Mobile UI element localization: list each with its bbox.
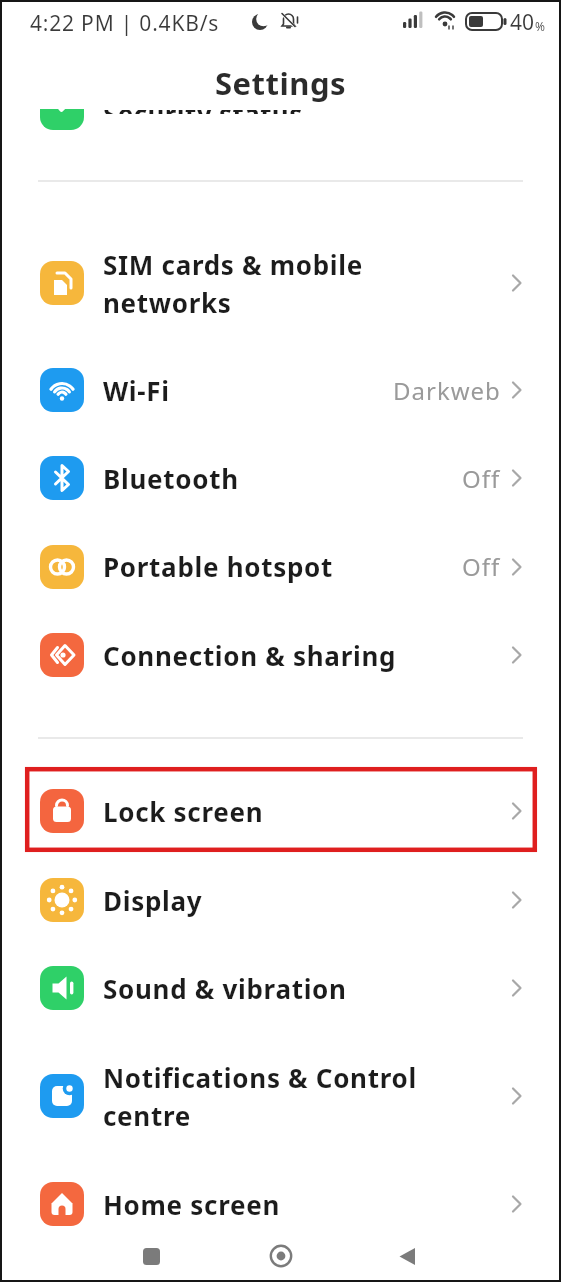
staticText: Darkweb — [393, 374, 501, 407]
staticText: Settings — [0, 62, 561, 104]
button[interactable]: Display — [0, 856, 561, 944]
staticText: Display — [103, 883, 511, 918]
button[interactable]: Lock screen — [0, 767, 561, 855]
staticText: Bluetooth — [103, 461, 462, 496]
staticText: Notifications & Control centre — [103, 1060, 511, 1133]
button[interactable] — [133, 1238, 169, 1274]
staticText: Lock screen — [103, 794, 511, 829]
staticText: Home screen — [103, 1187, 511, 1222]
staticText: Off — [462, 462, 501, 495]
staticText: 4:22 PM | 0.4KB/s — [30, 9, 220, 38]
button[interactable]: Portable hotspot — [0, 522, 561, 611]
button[interactable]: Sound & vibration — [0, 944, 561, 1032]
button[interactable]: SIM cards & mobile networks — [0, 221, 561, 345]
staticText: Security status — [103, 110, 303, 114]
button[interactable]: Wi-Fi — [0, 346, 561, 434]
staticText: Portable hotspot — [103, 549, 462, 584]
staticText: 40 — [510, 8, 535, 37]
staticText: % — [535, 18, 545, 34]
staticText: Wi-Fi — [103, 373, 393, 408]
button[interactable]: Bluetooth — [0, 434, 561, 522]
button[interactable]: Notifications & Control centre — [0, 1032, 561, 1160]
button[interactable]: Home screen — [0, 1160, 561, 1248]
button[interactable]: Connection & sharing — [0, 611, 561, 699]
button[interactable] — [389, 1238, 425, 1274]
button[interactable] — [263, 1238, 299, 1274]
staticText: Off — [462, 550, 501, 583]
staticText: Connection & sharing — [103, 638, 511, 673]
staticText: Sound & vibration — [103, 971, 511, 1006]
staticText: SIM cards & mobile networks — [103, 247, 511, 320]
